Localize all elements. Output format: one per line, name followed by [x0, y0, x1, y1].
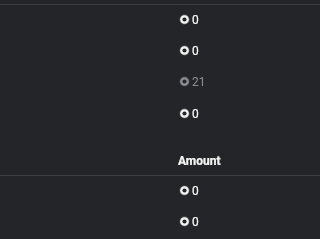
button[interactable]: 0	[0, 102, 320, 124]
staticText: 0	[192, 107, 199, 121]
staticText: 0	[192, 44, 199, 58]
staticText: 0	[192, 13, 199, 27]
button[interactable]: 21	[0, 70, 320, 92]
staticText: 0	[192, 215, 199, 229]
button[interactable]: 0	[0, 210, 320, 232]
button[interactable]: 0	[0, 39, 320, 61]
button[interactable]: 0	[0, 8, 320, 30]
staticText: 0	[192, 184, 199, 198]
button[interactable]: 0	[0, 179, 320, 201]
staticText: Amount	[178, 154, 221, 168]
staticText: 21	[192, 75, 206, 89]
